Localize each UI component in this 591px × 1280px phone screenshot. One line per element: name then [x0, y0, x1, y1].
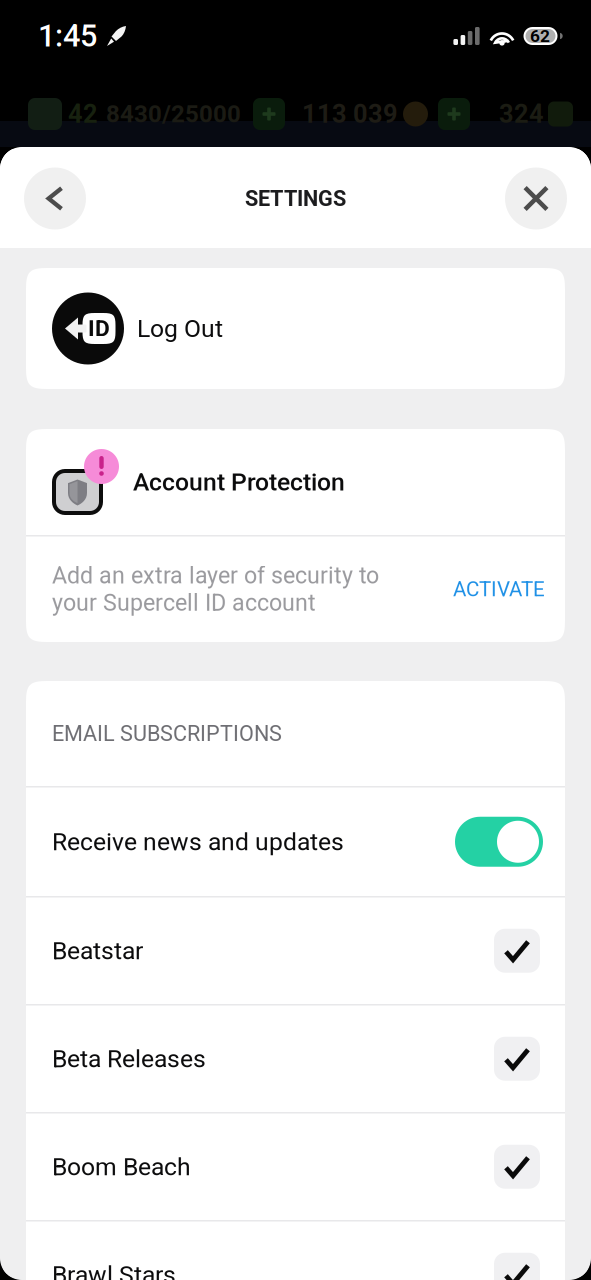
button[interactable]: Beta Releases: [26, 1005, 565, 1112]
button[interactable]: Boom Beach: [26, 1113, 565, 1220]
button[interactable]: ID: [26, 268, 565, 389]
staticText: Boom Beach: [52, 1152, 191, 1181]
staticText: Account Protection: [133, 467, 345, 496]
staticText: Receive news and updates: [52, 827, 344, 856]
staticText: ACTIVATE: [453, 577, 545, 601]
button[interactable]: Close: [505, 167, 567, 229]
button[interactable]: ACTIVATE: [453, 577, 545, 601]
button[interactable]: Beatstar: [26, 897, 565, 1004]
staticText: EMAIL SUBSCRIPTIONS: [52, 721, 282, 746]
staticText: ID: [88, 315, 110, 342]
staticText: 62: [530, 26, 550, 46]
button[interactable]: Back: [24, 167, 86, 229]
button[interactable]: Brawl Stars: [26, 1221, 565, 1280]
staticText: 324: [499, 99, 544, 129]
staticText: 1:45: [38, 18, 97, 54]
staticText: Add an extra layer of security to your S…: [52, 562, 379, 616]
staticText: 42: [68, 99, 98, 129]
button[interactable]: Receive news and updates: [26, 787, 565, 896]
staticText: Beta Releases: [52, 1044, 206, 1073]
staticText: SETTINGS: [245, 186, 346, 211]
staticText: Beatstar: [52, 936, 143, 965]
staticText: Log Out: [137, 314, 223, 343]
staticText: 8430/25000: [106, 100, 241, 128]
staticText: 113 039: [302, 99, 398, 129]
staticText: Brawl Stars: [52, 1260, 176, 1280]
button[interactable]: Account Protection: [26, 429, 565, 535]
